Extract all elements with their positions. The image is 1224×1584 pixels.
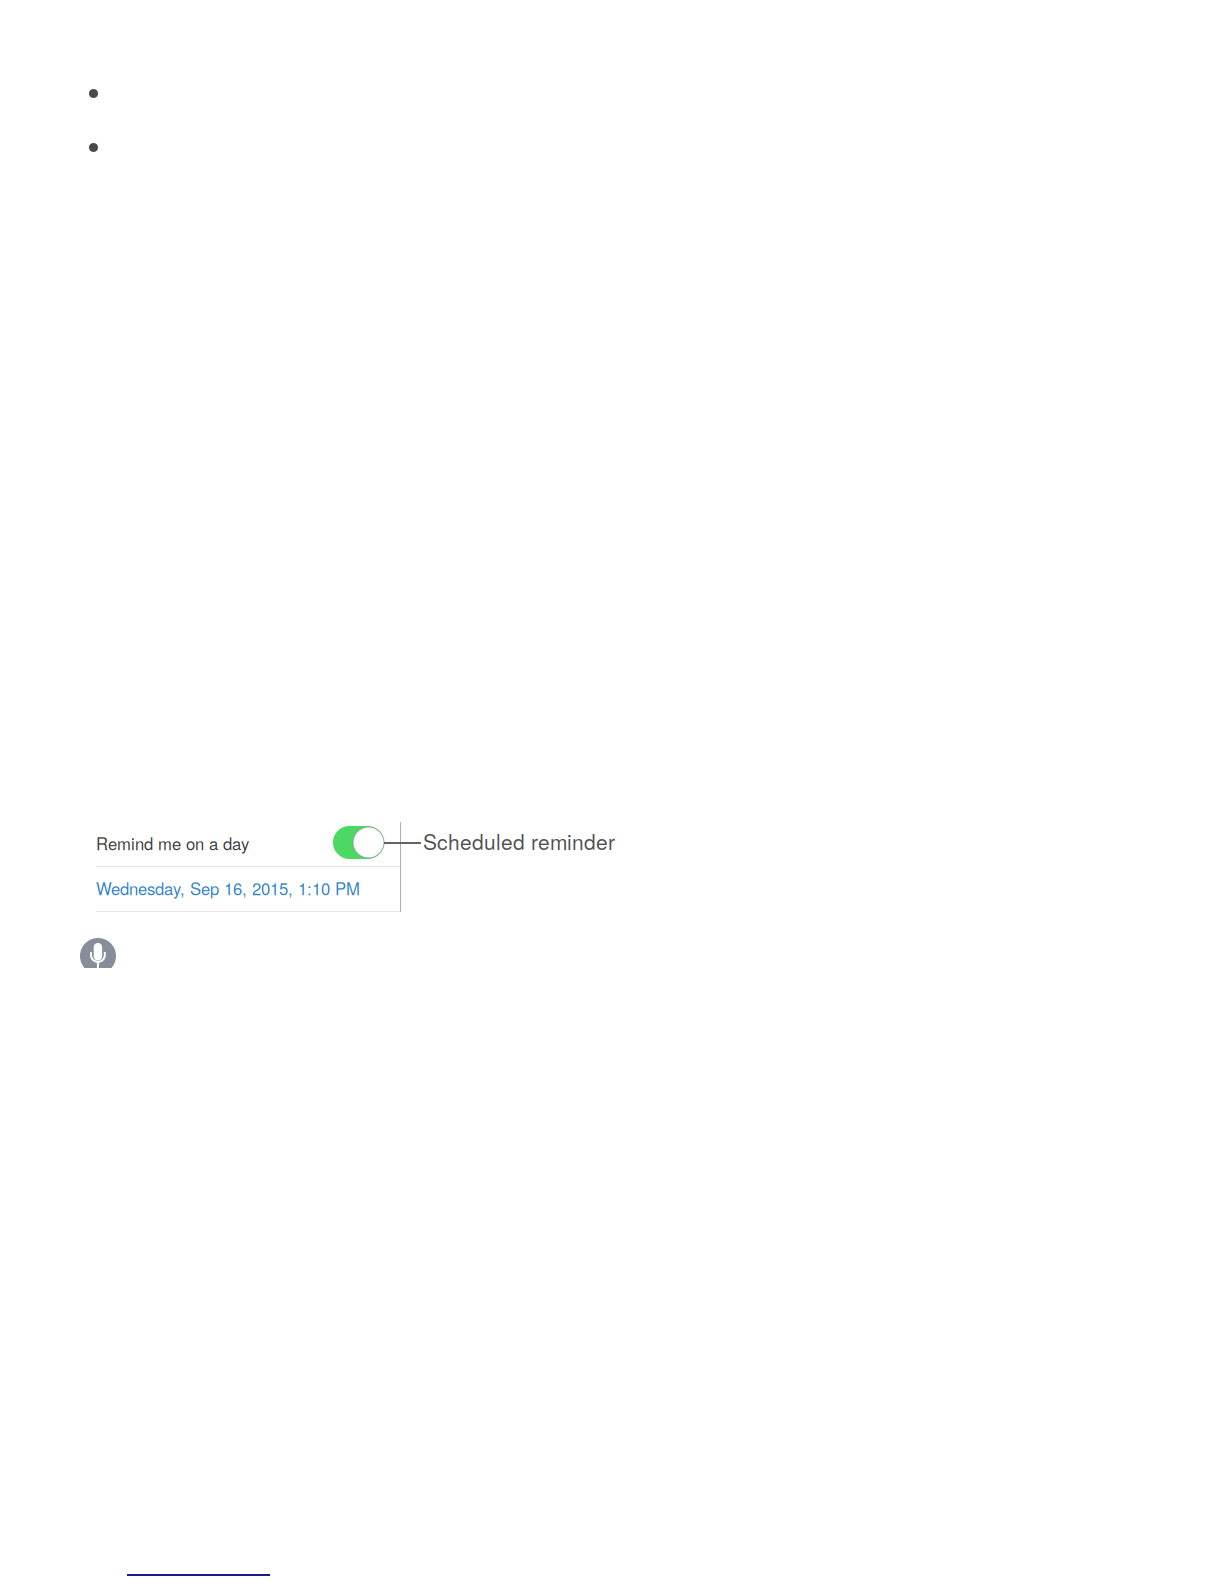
staticText: Scheduled reminder bbox=[423, 826, 615, 856]
button[interactable]: Wednesday, Sep 16, 2015, 1:10 PM bbox=[96, 868, 400, 912]
button[interactable]: Remind me on a day bbox=[96, 823, 400, 866]
button[interactable]: Dictate bbox=[80, 938, 116, 968]
staticText: Remind me on a day bbox=[96, 831, 249, 855]
staticText: Wednesday, Sep 16, 2015, 1:10 PM bbox=[96, 876, 360, 900]
